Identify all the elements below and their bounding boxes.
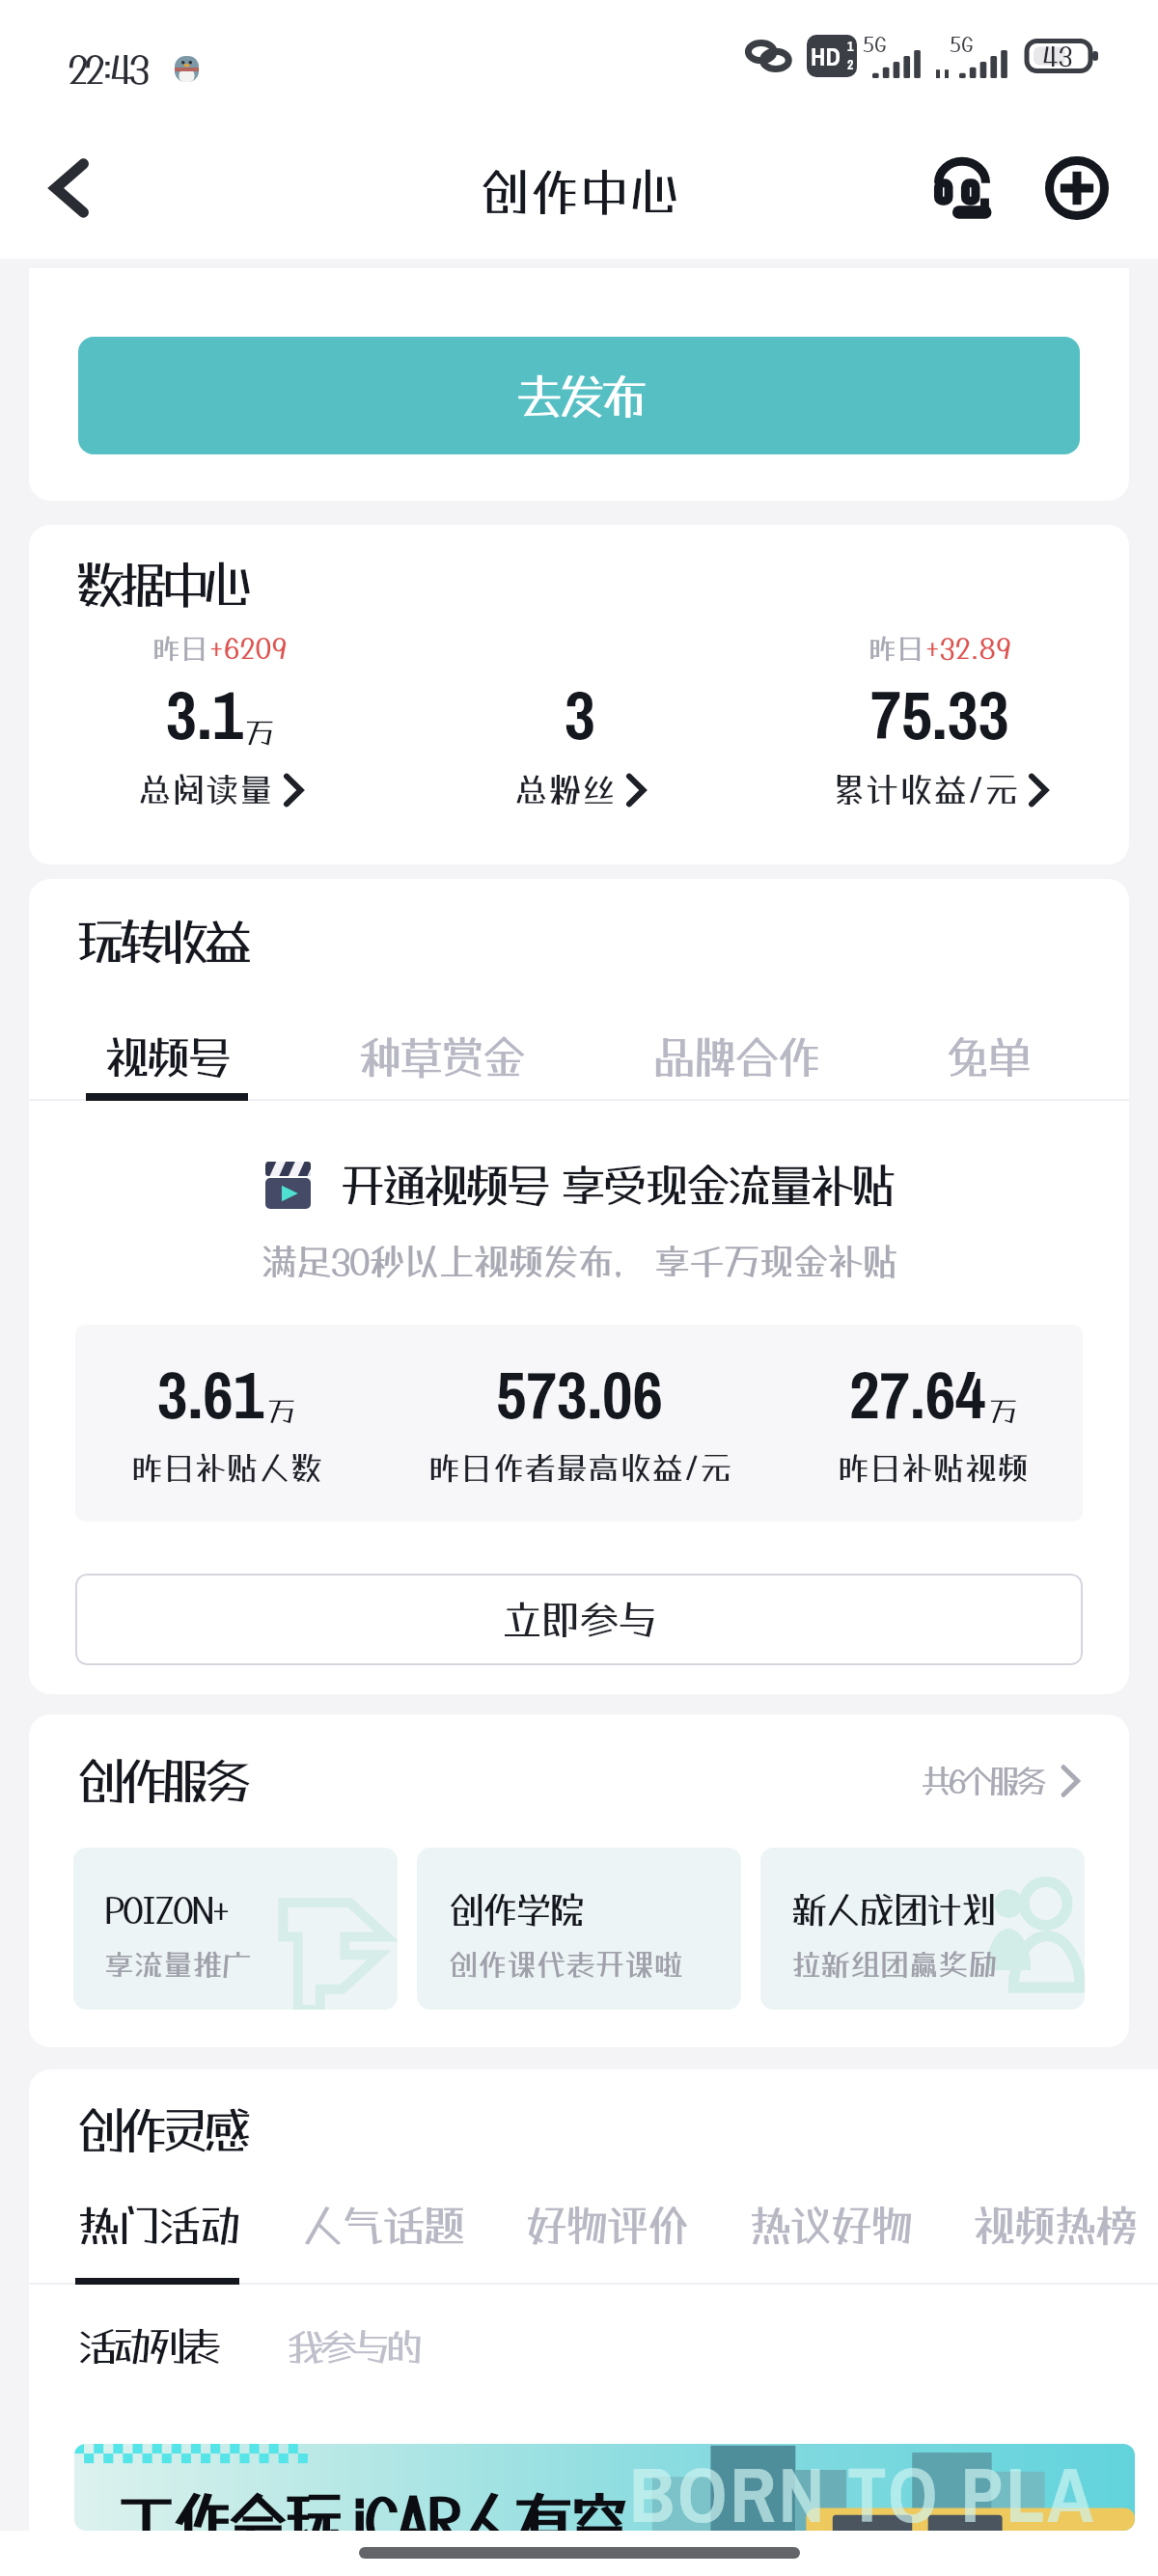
button[interactable]: 昨日	[759, 631, 1119, 809]
staticText: 开通视频号 享受现金流量补贴	[340, 1158, 893, 1213]
button[interactable]: 视频热榜	[969, 2194, 1140, 2257]
staticText: 创作灵感	[75, 2100, 246, 2159]
staticText: BORN TO PLA	[629, 2444, 1096, 2529]
staticText: 种草赏金	[357, 1030, 523, 1083]
staticText: 昨日	[868, 632, 925, 665]
staticText: 昨日作者最高收益/元	[428, 1449, 732, 1487]
staticText: 共6个服务	[921, 1762, 1042, 1800]
staticText: 工作会玩 iCAR人有空	[115, 2485, 624, 2531]
button[interactable]: 新人成团计划	[760, 1848, 1085, 2010]
staticText: 3.61	[157, 1350, 264, 1439]
button[interactable]: 品牌合作	[648, 1025, 821, 1089]
button[interactable]: 3	[400, 631, 759, 809]
staticText: 万	[245, 716, 274, 750]
button[interactable]: 热门活动	[73, 2194, 244, 2257]
staticText: 总粉丝	[514, 770, 617, 809]
staticText: POIZON+	[104, 1888, 228, 1932]
staticText: 22:43	[68, 46, 147, 92]
button[interactable]: 人气话题	[297, 2194, 468, 2257]
button[interactable]: 共6个服务	[921, 1762, 1080, 1800]
staticText: 数据中心	[75, 555, 246, 614]
staticText: 万	[267, 1395, 296, 1428]
staticText: 热议好物	[749, 2200, 912, 2251]
staticText: 活动列表	[77, 2322, 217, 2370]
button[interactable]: 视频号	[100, 1025, 233, 1089]
staticText: 享流量推广	[104, 1947, 252, 1983]
staticText: 视频热榜	[973, 2200, 1136, 2251]
staticText: 热门活动	[77, 2200, 240, 2251]
staticText: 视频号	[104, 1030, 229, 1083]
button[interactable]: 去发布	[78, 337, 1080, 454]
staticText: 总阅读量	[138, 770, 274, 809]
staticText: 好物评价	[525, 2200, 688, 2251]
button[interactable]: Customer service	[914, 140, 1010, 236]
staticText: 3	[565, 670, 595, 760]
staticText: 创作学院	[448, 1888, 584, 1932]
button[interactable]: 好物评价	[521, 2194, 692, 2257]
staticText: +6209	[209, 632, 288, 665]
staticText: 2	[847, 56, 854, 74]
staticText: 去发布	[515, 368, 643, 425]
staticText: 27.64	[849, 1350, 986, 1439]
staticText: 75.33	[870, 670, 1009, 760]
staticText: 立即参与	[502, 1596, 657, 1644]
staticText: 43	[1042, 41, 1073, 71]
staticText: 新人成团计划	[791, 1888, 995, 1932]
staticText: 我参与的	[287, 2324, 418, 2370]
staticText: 创作服务	[75, 1751, 246, 1810]
button[interactable]: 种草赏金	[353, 1025, 527, 1089]
button[interactable]: 热议好物	[745, 2194, 916, 2257]
button[interactable]: 免单	[942, 1025, 1033, 1089]
staticText: 昨日补贴人数	[131, 1449, 322, 1487]
staticText: 5G	[863, 31, 887, 56]
staticText: +32.89	[925, 632, 1011, 665]
staticText: 人气话题	[301, 2200, 464, 2251]
staticText: 5G	[950, 31, 974, 56]
button[interactable]: 昨日	[41, 631, 400, 809]
staticText: 573.06	[496, 1350, 664, 1439]
staticText: 累计收益/元	[832, 770, 1019, 809]
staticText: 拉新组团赢奖励	[791, 1947, 998, 1983]
button[interactable]: 创作学院	[417, 1848, 741, 2010]
staticText: 玩转收益	[75, 912, 246, 971]
staticText: HD	[811, 40, 841, 73]
staticText: 满足30秒以上视频发布， 享千万现金补贴	[29, 1240, 1129, 1283]
button[interactable]: 我参与的	[281, 2316, 424, 2377]
button[interactable]: Back	[12, 130, 127, 246]
button[interactable]: POIZON+	[73, 1848, 398, 2010]
button[interactable]: Add	[1029, 140, 1125, 236]
staticText: 创作中心	[479, 162, 680, 221]
button[interactable]: BORN TO PLA	[74, 2444, 1135, 2531]
staticText: 品牌合作	[651, 1030, 817, 1083]
staticText: 昨日	[152, 632, 209, 665]
staticText: 万	[989, 1395, 1018, 1428]
staticText: 昨日补贴视频	[838, 1449, 1029, 1487]
staticText: 3.1	[166, 670, 243, 760]
staticText: 创作课代表开课啦	[448, 1947, 683, 1983]
button[interactable]: 活动列表	[71, 2315, 223, 2378]
staticText: 1	[847, 38, 854, 56]
button[interactable]: 立即参与	[75, 1574, 1083, 1665]
staticText: 免单	[946, 1030, 1029, 1083]
